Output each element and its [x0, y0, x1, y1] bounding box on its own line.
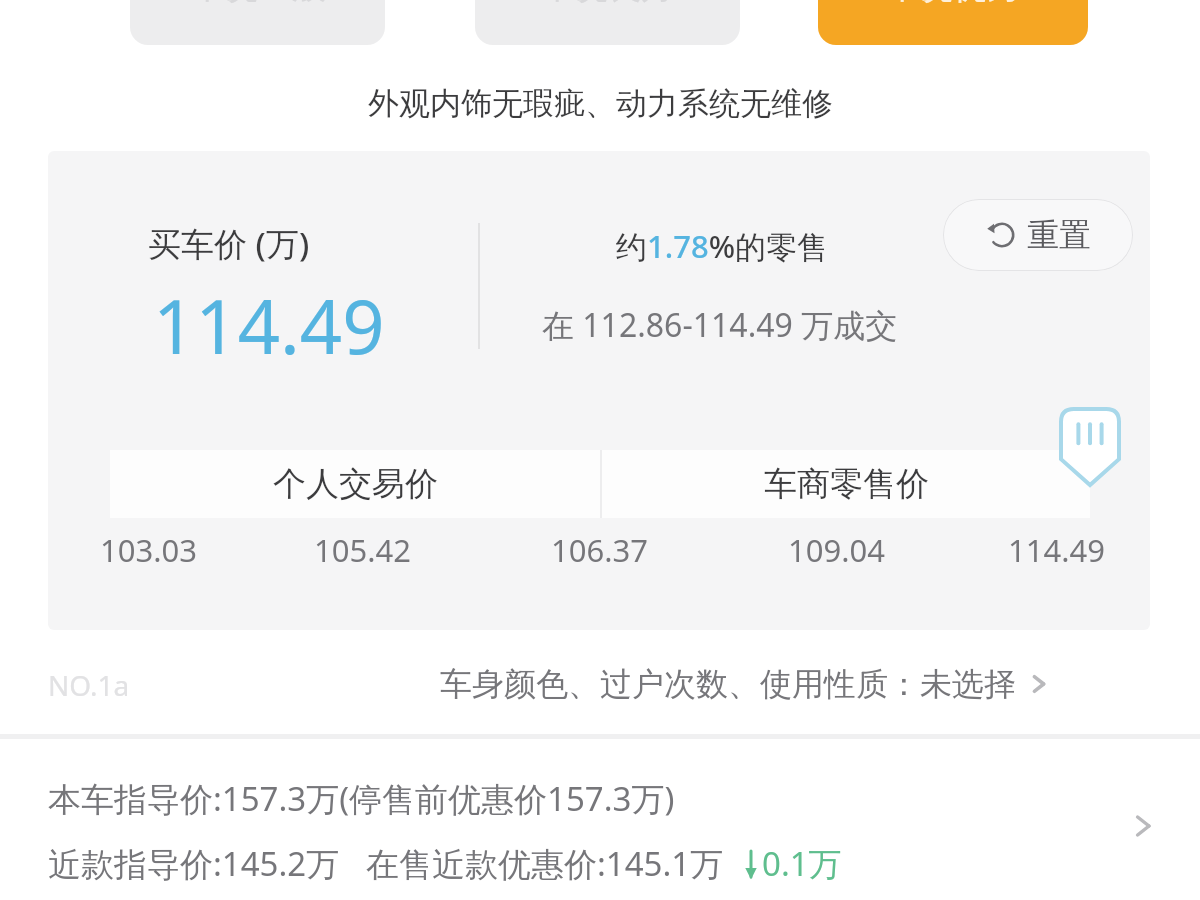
- staticText: 近款指导价:145.2万: [48, 841, 340, 886]
- staticText: 在售近款优惠价:145.1万: [366, 841, 724, 886]
- staticText: NO.1a: [48, 666, 130, 704]
- staticText: 买车价 (万): [148, 221, 310, 266]
- staticText: 105.42: [314, 529, 411, 571]
- staticText: 本车指导价:157.3万(停售前优惠价157.3万): [48, 776, 675, 821]
- staticText: 114.49: [153, 275, 385, 376]
- staticText: 约1.78%的零售: [616, 225, 829, 267]
- staticText: 103.03: [100, 529, 197, 571]
- staticText: 车况优秀: [885, 0, 1021, 8]
- staticText: 在 112.86-114.49 万成交: [542, 303, 898, 347]
- staticText: 车况一般: [190, 0, 326, 8]
- staticText: 个人交易价: [273, 463, 438, 505]
- staticText: 重置: [1027, 215, 1091, 255]
- button[interactable]: 车身颜色、过户次数、使用性质：未选择: [440, 656, 1052, 712]
- staticText: 车商零售价: [764, 463, 929, 505]
- staticText: 106.37: [551, 529, 648, 571]
- staticText: 0.1万: [762, 841, 842, 886]
- button[interactable]: 车商零售价: [602, 450, 1090, 518]
- button[interactable]: 价格滑块: [1061, 409, 1119, 485]
- button[interactable]: 车况优秀: [818, 0, 1088, 45]
- staticText: 车身颜色、过户次数、使用性质：未选择: [440, 664, 1016, 704]
- staticText: 109.04: [788, 529, 885, 571]
- staticText: 车况良好: [540, 0, 676, 8]
- button[interactable]: 本车指导价:157.3万(停售前优惠价157.3万): [0, 739, 1200, 900]
- staticText: 外观内饰无瑕疵、动力系统无维修: [368, 84, 833, 123]
- staticText: 114.49: [1008, 529, 1105, 571]
- button[interactable]: 重置: [943, 199, 1133, 271]
- button[interactable]: 个人交易价: [110, 450, 600, 518]
